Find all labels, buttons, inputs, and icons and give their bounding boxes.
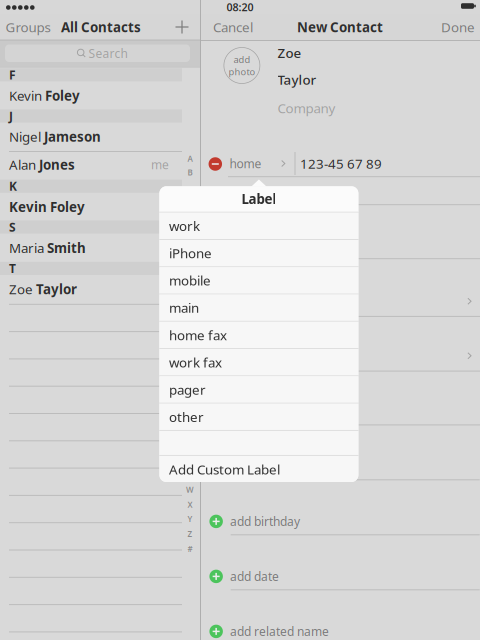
staticText: Groups <box>5 18 50 36</box>
staticText: Maria Smith <box>9 239 86 257</box>
button[interactable]: home fax <box>159 322 358 348</box>
staticText: Zoe Taylor <box>9 280 77 298</box>
staticText: 123-45 67 89 <box>300 155 382 172</box>
staticText: work fax <box>169 353 222 371</box>
button[interactable]: Nigel Jameson <box>0 126 182 147</box>
staticText: photo <box>228 65 255 78</box>
button[interactable]: Done <box>434 14 480 40</box>
button[interactable]: add date <box>209 566 479 586</box>
staticText: S <box>9 219 16 235</box>
staticText: Zoe <box>278 44 302 62</box>
button[interactable]: Cancel <box>207 14 259 40</box>
staticText: Company <box>278 99 336 117</box>
button[interactable]: other <box>159 404 358 430</box>
staticText: work <box>169 217 200 235</box>
button[interactable]: Add Custom Label <box>159 456 358 482</box>
staticText: Z <box>187 528 192 539</box>
button[interactable]: Search <box>5 44 190 62</box>
button[interactable]: add birthday <box>209 511 479 531</box>
button[interactable]: add <box>223 47 260 83</box>
button[interactable]: work fax <box>159 349 358 375</box>
staticText: me <box>151 157 169 172</box>
button[interactable]: pager <box>159 376 358 403</box>
staticText: Search <box>89 45 128 61</box>
staticText: main <box>169 299 199 316</box>
staticText: Cancel <box>213 18 253 36</box>
staticText: B <box>187 167 192 178</box>
staticText: Taylor <box>278 71 317 88</box>
button[interactable]: Zoe Taylor <box>0 279 182 299</box>
staticText: A <box>187 153 192 164</box>
staticText: home <box>229 155 261 171</box>
staticText: T <box>9 260 16 276</box>
staticText: F <box>9 67 16 83</box>
staticText: home fax <box>169 326 227 344</box>
button[interactable]: Remove phone number <box>209 157 222 171</box>
button[interactable]: home <box>229 150 289 177</box>
staticText: Label <box>241 190 276 208</box>
staticText: W <box>186 484 194 495</box>
staticText: Add Custom Label <box>169 460 280 478</box>
staticText: Y <box>187 514 192 524</box>
staticText: X <box>187 499 192 510</box>
staticText: add related name <box>230 623 329 639</box>
button[interactable]: iPhone <box>159 240 358 266</box>
button[interactable]: mobile <box>159 267 358 294</box>
staticText: add birthday <box>230 513 300 529</box>
staticText: add date <box>230 568 279 584</box>
button[interactable]: Alan Jones <box>0 154 182 175</box>
staticText: other <box>169 408 204 426</box>
staticText: Nigel Jameson <box>9 128 101 145</box>
button[interactable]: main <box>159 295 358 321</box>
staticText: Alan Jones <box>9 156 75 173</box>
staticText: K <box>9 178 17 194</box>
staticText: J <box>9 108 13 124</box>
staticText: mobile <box>169 272 211 289</box>
button[interactable]: Maria Smith <box>0 237 182 258</box>
button[interactable]: Kevin Foley <box>0 85 182 106</box>
button[interactable]: work <box>159 213 358 239</box>
staticText: All Contacts <box>61 18 141 36</box>
staticText: pager <box>169 381 206 398</box>
staticText: 08:20 <box>226 0 253 14</box>
staticText: Done <box>441 18 475 36</box>
button[interactable]: Kevin Foley <box>0 196 182 217</box>
button[interactable]: Groups <box>2 14 54 40</box>
staticText: # <box>187 543 192 554</box>
staticText: Kevin Foley <box>9 198 85 216</box>
button[interactable]: add related name <box>209 621 479 640</box>
staticText: iPhone <box>169 244 212 262</box>
staticText: Kevin Foley <box>9 87 80 104</box>
button[interactable]: Add contact <box>168 14 196 40</box>
staticText: New Contact <box>297 18 383 36</box>
staticText: add <box>233 53 250 65</box>
